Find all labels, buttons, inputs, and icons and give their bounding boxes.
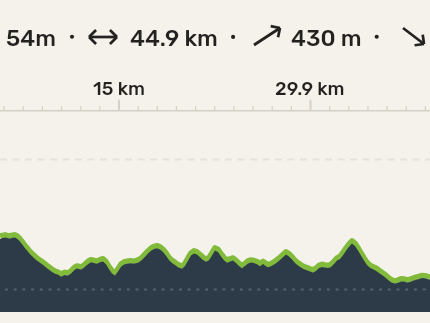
staticText: 430 m: [291, 24, 362, 51]
staticText: 29.9 km: [275, 77, 345, 99]
staticText: m 54m: [0, 24, 57, 51]
staticText: 15 km: [93, 77, 145, 99]
staticText: 44.9 km: [130, 24, 218, 51]
button[interactable]: Route statistics: [0, 18, 430, 64]
button[interactable]: Elevation profile: [0, 120, 430, 323]
